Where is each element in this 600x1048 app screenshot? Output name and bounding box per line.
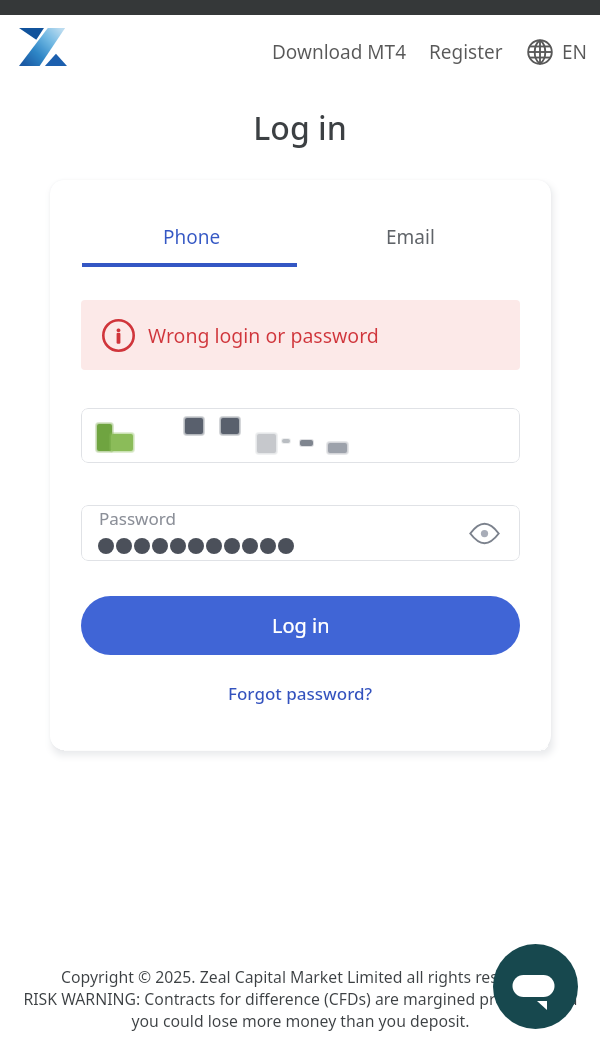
staticText: Phone: [163, 224, 221, 250]
button[interactable]: Password: [81, 505, 520, 561]
staticText: Email: [386, 224, 435, 250]
button[interactable]: Show password: [466, 515, 502, 551]
staticText: EN: [562, 39, 588, 65]
button[interactable]: Email: [301, 180, 520, 267]
staticText: Register: [429, 39, 503, 65]
button[interactable]: Register: [429, 27, 503, 77]
button[interactable]: [81, 408, 520, 463]
button[interactable]: Log in: [81, 596, 520, 655]
staticText: Wrong login or password: [148, 322, 379, 349]
button[interactable]: Phone: [82, 180, 301, 267]
button[interactable]: Forgot password?: [224, 679, 377, 708]
staticText: Download MT4: [272, 39, 407, 65]
staticText: Log in: [0, 106, 600, 150]
button[interactable]: Download MT4: [272, 27, 407, 77]
staticText: Copyright © 2025. Zeal Capital Market Li…: [23, 966, 578, 1032]
staticText: Password: [99, 507, 176, 530]
staticText: Log in: [272, 612, 330, 639]
button[interactable]: EN: [527, 30, 588, 74]
button[interactable]: Open chat: [493, 944, 578, 1029]
